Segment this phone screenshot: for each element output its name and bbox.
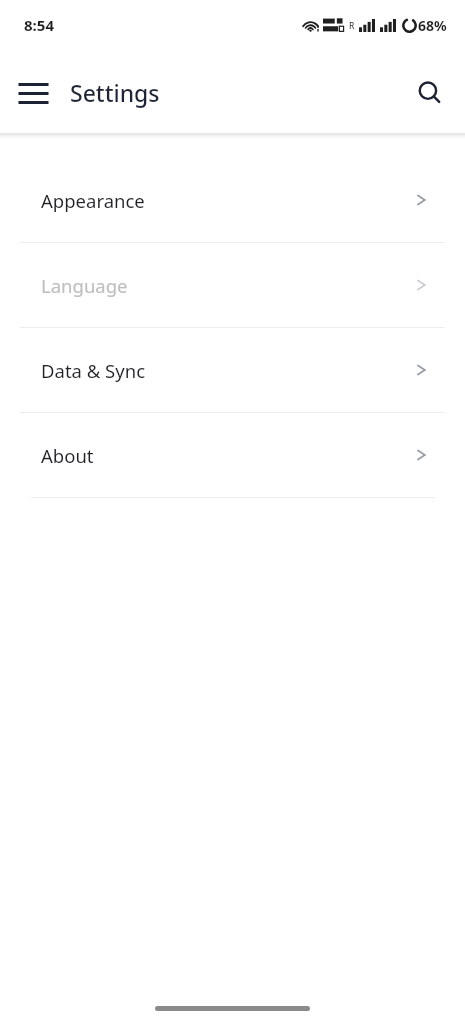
button[interactable]: Language — [0, 243, 465, 327]
staticText: Settings — [70, 77, 160, 108]
button[interactable]: Data & Sync — [0, 328, 465, 412]
staticText: Appearance — [41, 188, 416, 213]
staticText: R — [349, 20, 355, 32]
button[interactable]: About — [0, 413, 465, 497]
button[interactable]: Search — [406, 69, 454, 117]
staticText: About — [41, 443, 416, 468]
staticText: 68% — [418, 16, 447, 35]
staticText: 8:54 — [24, 15, 54, 35]
button[interactable]: Appearance — [0, 158, 465, 242]
button[interactable]: Open navigation menu — [8, 68, 58, 118]
staticText: Language — [41, 273, 416, 298]
staticText: Data & Sync — [41, 358, 416, 383]
